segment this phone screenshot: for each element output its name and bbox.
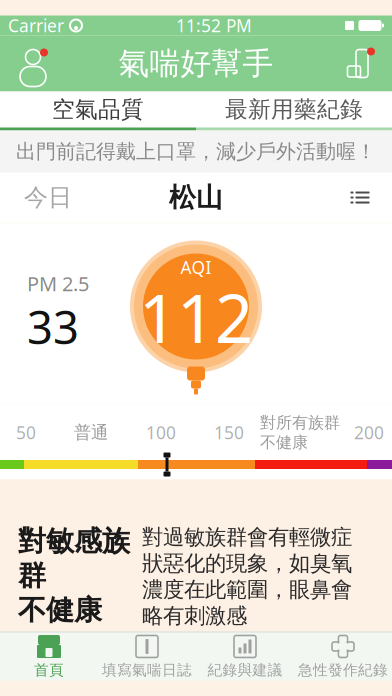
staticText: 紀錄與建議 [207, 661, 282, 679]
staticText: 松山 [169, 181, 223, 214]
staticText: PM 2.5 [27, 270, 89, 297]
staticText: 11:52 PM [176, 14, 252, 37]
staticText: AQI [180, 256, 211, 279]
staticText: 100 [146, 421, 176, 444]
button[interactable]: 選擇測站 [338, 175, 382, 219]
staticText: 33 [27, 297, 79, 357]
button[interactable]: 紀錄與建議 [196, 632, 294, 680]
staticText: 氣喘好幫手 [118, 45, 273, 82]
staticText: 空氣品質 [52, 96, 144, 123]
staticText: 急性發作紀錄 [298, 661, 388, 679]
staticText: 50 [16, 421, 36, 444]
staticText: 對所有族群 不健康 [260, 413, 340, 452]
staticText: 200 [354, 421, 384, 444]
staticText: 對過敏族群會有輕微症狀惡化的現象，如臭氧濃度在此範圍，眼鼻會略有刺激感 [142, 524, 352, 629]
button[interactable]: 填寫氣喘日誌 [98, 632, 196, 680]
staticText: 150 [214, 421, 244, 444]
staticText: Carrier [8, 14, 64, 37]
staticText: 112 [139, 273, 253, 361]
button[interactable]: 首頁 [0, 632, 98, 680]
staticText: 填寫氣喘日誌 [102, 661, 192, 679]
staticText: 首頁 [34, 661, 64, 679]
button[interactable]: 個人資料 [6, 35, 60, 91]
button[interactable]: 最新用藥紀錄 [196, 91, 392, 127]
staticText: 對敏感族群 不健康 [18, 524, 130, 627]
button[interactable]: 急性發作紀錄 [294, 632, 392, 680]
staticText: 出門前記得戴上口罩，減少戶外活動喔！ [16, 139, 376, 164]
button[interactable]: 用藥紀錄 [332, 35, 386, 91]
staticText: 今日 [24, 183, 72, 212]
button[interactable]: 空氣品質 [0, 91, 196, 127]
staticText: 普通 [74, 422, 108, 443]
staticText: 最新用藥紀錄 [225, 96, 363, 123]
